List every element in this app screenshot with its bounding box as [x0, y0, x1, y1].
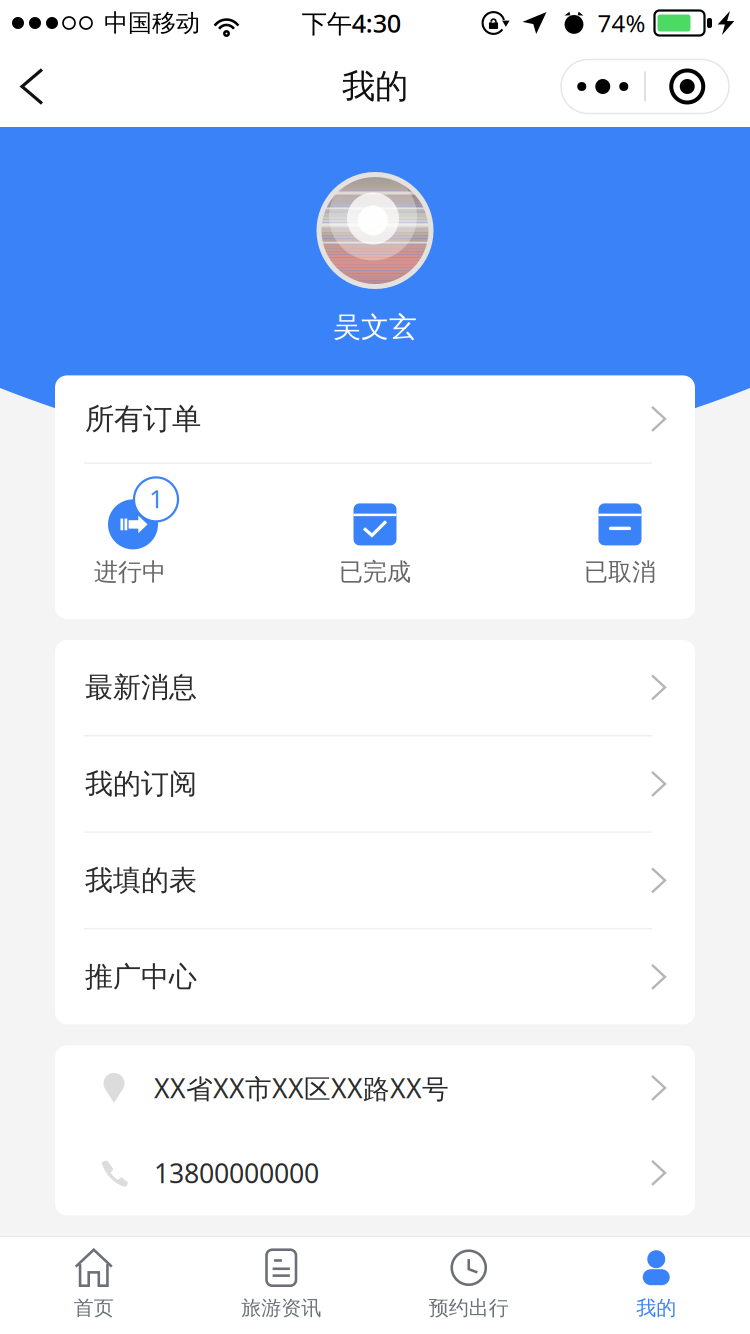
staticText: 13800000000	[154, 1155, 319, 1191]
staticText: 吴文玄	[333, 310, 417, 344]
staticText: 预约出行	[429, 1296, 509, 1320]
button[interactable]: 已完成	[300, 477, 450, 589]
button[interactable]: 13800000000	[55, 1130, 695, 1215]
button[interactable]: 我的	[562, 1236, 750, 1334]
button[interactable]: More	[561, 59, 729, 113]
button[interactable]: 我填的表	[55, 833, 695, 928]
button[interactable]: Back	[0, 53, 64, 119]
staticText: 我填的表	[85, 863, 197, 898]
staticText: 我的	[342, 66, 408, 107]
staticText: 我的订阅	[85, 767, 197, 801]
staticText: 旅游资讯	[241, 1296, 321, 1320]
staticText: 推广中心	[85, 960, 197, 994]
staticText: 进行中	[94, 557, 166, 587]
staticText: 最新消息	[85, 670, 197, 705]
staticText: 所有订单	[85, 401, 201, 437]
staticText: 已取消	[584, 557, 656, 587]
staticText: 我的	[636, 1296, 676, 1320]
button[interactable]: 预约出行	[375, 1236, 562, 1334]
button[interactable]: 首页	[0, 1236, 187, 1334]
button[interactable]: 推广中心	[55, 929, 695, 1024]
button[interactable]: 我的订阅	[55, 736, 695, 831]
staticText: 下午4:30	[302, 6, 401, 40]
button[interactable]: XX省XX市XX区XX路XX号	[55, 1045, 695, 1130]
button[interactable]: 所有订单	[55, 375, 695, 462]
staticText: 首页	[74, 1296, 114, 1320]
staticText: 已完成	[339, 557, 411, 587]
button[interactable]: 旅游资讯	[187, 1236, 375, 1334]
button[interactable]: 已取消	[545, 477, 695, 589]
button[interactable]: 1	[55, 477, 205, 589]
button[interactable]: 最新消息	[55, 640, 695, 735]
staticText: 中国移动	[104, 8, 200, 38]
staticText: XX省XX市XX区XX路XX号	[154, 1070, 449, 1106]
staticText: 74%	[597, 7, 645, 39]
staticText: 1	[149, 482, 163, 515]
